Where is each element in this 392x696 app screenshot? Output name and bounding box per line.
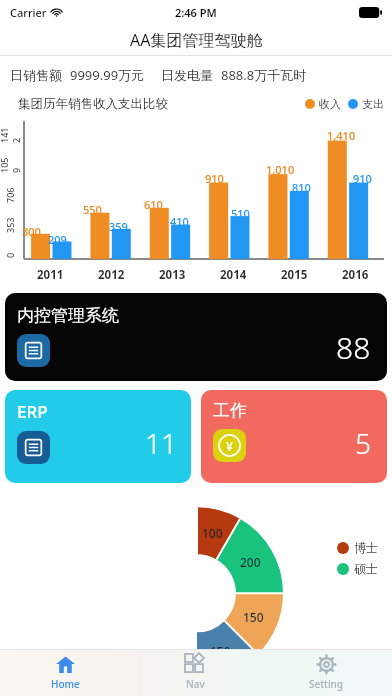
button[interactable]: Home: [0, 649, 130, 696]
staticText: 2014: [220, 267, 247, 283]
staticText: 工作: [213, 400, 247, 421]
staticText: 1,410: [327, 128, 356, 143]
staticText: ERP: [17, 400, 48, 423]
staticText: 2015: [281, 267, 308, 283]
staticText: 706: [4, 187, 16, 203]
staticText: 收入: [319, 97, 341, 111]
staticText: Setting: [309, 677, 344, 691]
staticText: 300: [22, 224, 41, 239]
staticText: 209: [48, 232, 67, 247]
staticText: 810: [292, 180, 311, 195]
staticText: 日发电量: [161, 67, 213, 83]
staticText: AA集团管理驾驶舱: [130, 29, 263, 51]
staticText: Nav: [186, 677, 205, 691]
staticText: 9999.99万元: [70, 66, 145, 84]
staticText: 888.8万千瓦时: [221, 66, 307, 84]
staticText: 1412: [0, 127, 22, 143]
staticText: 510: [231, 206, 250, 221]
staticText: 550: [83, 202, 102, 217]
staticText: 359: [109, 219, 128, 234]
staticText: 5: [355, 424, 371, 462]
button[interactable]: Setting: [261, 649, 392, 696]
staticText: 2012: [98, 267, 125, 283]
staticText: 集团历年销售收入支出比较: [18, 96, 168, 112]
button[interactable]: Nav: [130, 649, 261, 696]
staticText: 内控管理系统: [17, 305, 119, 326]
staticText: Home: [51, 677, 80, 691]
button[interactable]: 内控管理系统: [5, 293, 387, 381]
staticText: 610: [144, 197, 163, 212]
staticText: 1,010: [266, 162, 295, 177]
staticText: 2011: [37, 267, 64, 283]
staticText: Carrier: [10, 5, 47, 20]
staticText: 150: [210, 643, 231, 659]
staticText: 353: [4, 217, 16, 233]
staticText: 88: [336, 327, 371, 368]
staticText: 2013: [159, 267, 186, 283]
staticText: 日销售额: [10, 67, 62, 83]
staticText: 1059: [0, 157, 22, 173]
staticText: 支出: [362, 97, 384, 111]
staticText: 博士: [354, 540, 378, 555]
staticText: 410: [170, 214, 189, 229]
button[interactable]: ERP: [5, 390, 191, 483]
staticText: 2016: [342, 267, 369, 283]
staticText: 150: [243, 609, 264, 625]
staticText: 0: [4, 252, 16, 258]
staticText: 2:46 PM: [175, 5, 217, 20]
staticText: 11: [145, 424, 177, 462]
button[interactable]: 工作: [201, 390, 387, 483]
staticText: 910: [353, 171, 372, 186]
staticText: 200: [240, 554, 261, 570]
staticText: 硕士: [354, 561, 378, 576]
staticText: 910: [205, 171, 224, 186]
staticText: ¥: [226, 438, 233, 454]
staticText: 100: [202, 525, 223, 541]
